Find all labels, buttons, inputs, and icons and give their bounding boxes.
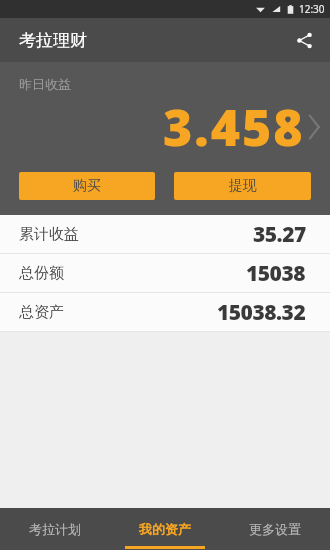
button[interactable]: Share (286, 22, 322, 58)
button[interactable]: 我的资产 (110, 508, 220, 550)
staticText: 15038.32 (217, 298, 306, 327)
button[interactable]: 总资产 (0, 293, 330, 331)
staticText: 购买 (73, 177, 101, 195)
button[interactable]: 3.458 (163, 93, 322, 161)
staticText: 考拉计划 (29, 521, 81, 537)
staticText: 15038 (246, 259, 306, 288)
staticText: 我的资产 (139, 521, 191, 537)
staticText: 3.458 (163, 93, 305, 161)
staticText: 昨日收益 (19, 76, 71, 92)
button[interactable]: 累计收益 (0, 215, 330, 253)
button[interactable]: 总份额 (0, 254, 330, 292)
staticText: 累计收益 (19, 225, 79, 244)
button[interactable]: 提现 (174, 172, 311, 200)
button[interactable]: 购买 (19, 172, 155, 200)
staticText: 总资产 (19, 303, 64, 322)
staticText: 更多设置 (249, 521, 301, 537)
staticText: 35.27 (253, 220, 306, 249)
staticText: 考拉理财 (19, 30, 87, 51)
button[interactable]: 考拉计划 (0, 508, 110, 550)
staticText: 提现 (229, 177, 257, 195)
button[interactable]: 更多设置 (220, 508, 330, 550)
staticText: 总份额 (19, 264, 64, 283)
staticText: 12:30 (299, 2, 325, 16)
